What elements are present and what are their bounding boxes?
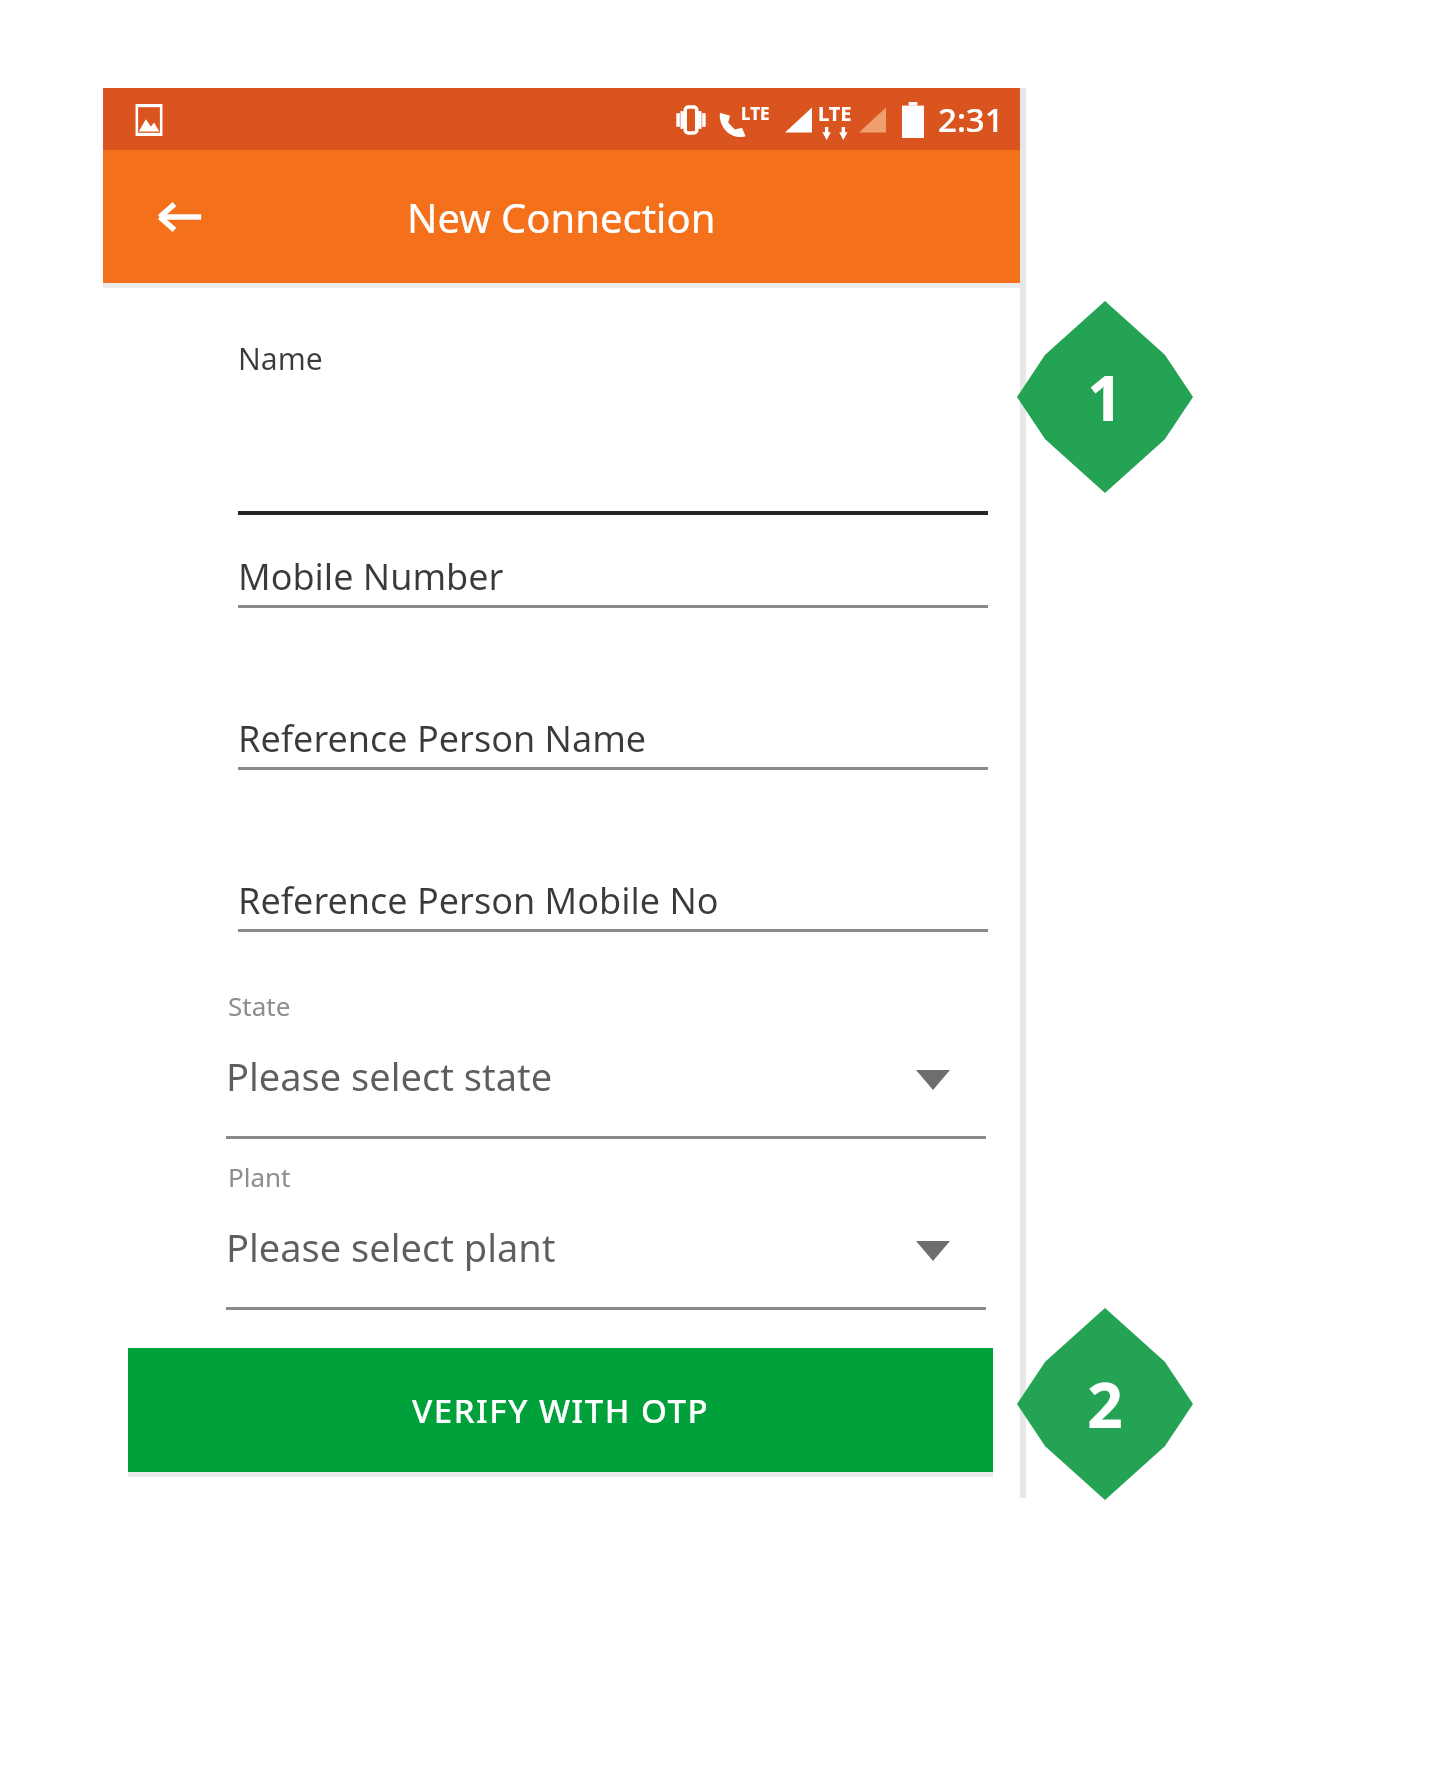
button[interactable]: Mobile Number — [103, 548, 1020, 668]
staticText: 2 — [1087, 1362, 1123, 1446]
staticText: Name — [238, 338, 323, 379]
button[interactable]: State — [103, 988, 1020, 1156]
staticText: Mobile Number — [238, 552, 504, 601]
staticText: Plant — [228, 1159, 291, 1194]
button[interactable]: Plant — [103, 1159, 1020, 1327]
staticText: Reference Person Mobile No — [238, 876, 719, 925]
button[interactable]: Open Plant dropdown — [903, 1221, 963, 1281]
staticText: State — [228, 988, 291, 1023]
staticText: Please select state — [226, 1050, 553, 1102]
staticText: Reference Person Name — [238, 714, 647, 763]
staticText: LTE — [818, 100, 852, 127]
staticText: VERIFY WITH OTP — [412, 1388, 710, 1433]
button[interactable]: Name — [103, 318, 1020, 518]
staticText: New Connection — [407, 190, 716, 244]
staticText: LTE — [741, 102, 770, 125]
staticText: Please select plant — [226, 1221, 556, 1273]
button[interactable]: Open State dropdown — [903, 1050, 963, 1110]
staticText: 1 — [1087, 355, 1123, 439]
button[interactable]: VERIFY WITH OTP — [128, 1348, 993, 1472]
staticText: 2:31 — [938, 97, 1004, 142]
button[interactable]: Reference Person Name — [103, 710, 1020, 830]
button[interactable]: Reference Person Mobile No — [103, 872, 1020, 992]
button[interactable]: Back — [135, 150, 225, 283]
